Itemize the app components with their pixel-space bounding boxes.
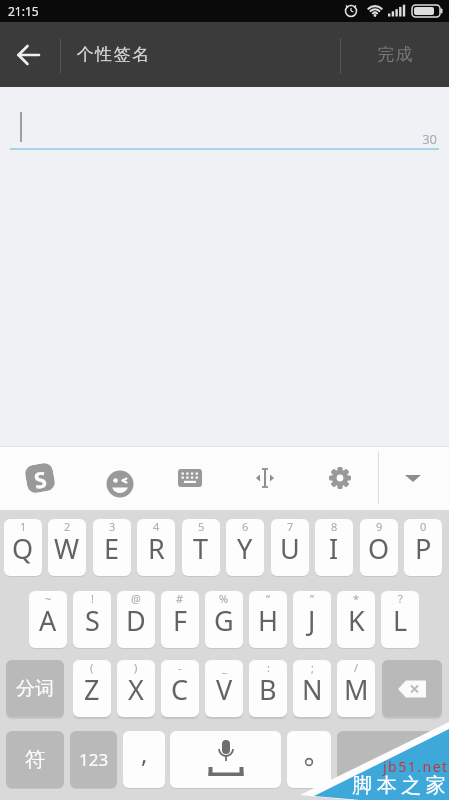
staticText: X	[128, 671, 144, 708]
staticText: 符	[25, 747, 45, 772]
staticText: 21:15	[8, 3, 39, 19]
staticText: E	[104, 530, 120, 567]
button[interactable]: :	[249, 660, 287, 717]
button[interactable]: 8	[315, 519, 353, 576]
staticText: 3	[109, 519, 116, 534]
staticText: -	[178, 660, 182, 675]
button[interactable]: ~	[29, 591, 67, 648]
button[interactable]: 分词	[6, 660, 64, 717]
staticText: ”	[310, 591, 314, 606]
button[interactable]: 123	[70, 731, 117, 788]
staticText: *	[353, 591, 360, 606]
button[interactable]: 符	[6, 731, 64, 788]
staticText: G	[214, 602, 234, 639]
staticText: @	[131, 591, 141, 606]
button[interactable]	[382, 660, 442, 717]
button[interactable]: S	[25, 462, 55, 494]
staticText: 个性签名	[76, 44, 150, 65]
staticText: ,	[141, 737, 148, 770]
staticText: L	[393, 602, 408, 639]
staticText: ?	[398, 591, 403, 606]
button[interactable]: ?	[381, 591, 419, 648]
staticText: T	[193, 530, 209, 567]
staticText: Y	[237, 530, 253, 567]
staticText: 6	[242, 519, 249, 534]
button[interactable]	[170, 731, 281, 788]
staticText: S	[32, 463, 49, 493]
staticText: B	[259, 671, 277, 708]
button[interactable]: 6	[226, 519, 264, 576]
staticText: H	[258, 602, 279, 639]
staticText: K	[348, 602, 365, 639]
button[interactable]: 1	[4, 519, 42, 576]
button[interactable]: -	[161, 660, 199, 717]
staticText: 0	[420, 519, 427, 534]
staticText: jb51.net	[383, 757, 449, 776]
staticText: V	[216, 671, 233, 708]
staticText: J	[308, 602, 316, 639]
button[interactable]: 7	[271, 519, 309, 576]
button[interactable]: 2	[48, 519, 86, 576]
staticText: F	[173, 602, 188, 639]
button[interactable]	[327, 464, 353, 492]
button[interactable]	[105, 469, 134, 498]
staticText: O	[368, 530, 390, 567]
button[interactable]: 完成	[341, 22, 449, 87]
button[interactable]	[252, 464, 278, 492]
staticText: !	[91, 591, 94, 606]
staticText: (	[90, 660, 94, 675]
button[interactable]	[398, 464, 428, 492]
button[interactable]: _	[205, 660, 243, 717]
button[interactable]: (	[73, 660, 111, 717]
button[interactable]: ”	[293, 591, 331, 648]
button[interactable]: ,	[123, 731, 165, 788]
staticText: ;	[311, 660, 314, 675]
staticText: 1	[20, 519, 27, 534]
staticText: _	[222, 660, 227, 675]
button[interactable]: %	[205, 591, 243, 648]
button[interactable]	[0, 22, 58, 87]
button[interactable]: !	[73, 591, 111, 648]
button[interactable]: 3	[93, 519, 131, 576]
button[interactable]: 0	[404, 519, 442, 576]
staticText: “	[266, 591, 270, 606]
staticText: 7	[287, 519, 294, 534]
button[interactable]	[287, 731, 331, 788]
staticText: 30	[402, 130, 437, 148]
staticText: 8	[331, 519, 338, 534]
staticText: N	[302, 671, 323, 708]
staticText: W	[54, 530, 80, 567]
button[interactable]: /	[337, 660, 375, 717]
staticText: 4	[153, 519, 160, 534]
button[interactable]: “	[249, 591, 287, 648]
button[interactable]	[337, 731, 442, 788]
staticText: 2	[64, 519, 71, 534]
button[interactable]: #	[161, 591, 199, 648]
button[interactable]: 4	[137, 519, 175, 576]
button[interactable]: )	[117, 660, 155, 717]
staticText: ~	[45, 591, 52, 606]
staticText: A	[39, 602, 57, 639]
staticText: /	[354, 660, 359, 675]
staticText: %	[219, 591, 229, 606]
staticText: :	[267, 660, 270, 675]
staticText: 脚本之家	[350, 773, 448, 798]
button[interactable]: 9	[360, 519, 398, 576]
staticText: Z	[84, 671, 100, 708]
staticText: C	[171, 671, 189, 708]
button[interactable]	[177, 464, 203, 492]
button[interactable]: ;	[293, 660, 331, 717]
staticText: S	[85, 602, 100, 639]
button[interactable]: @	[117, 591, 155, 648]
button[interactable]: 5	[182, 519, 220, 576]
staticText: 分词	[16, 677, 54, 701]
staticText: 5	[198, 519, 205, 534]
staticText: )	[134, 660, 138, 675]
staticText: M	[344, 671, 369, 708]
staticText: 9	[376, 519, 383, 534]
staticText: P	[415, 530, 432, 567]
staticText: D	[126, 602, 146, 639]
button[interactable]: *	[337, 591, 375, 648]
staticText: I	[329, 530, 339, 567]
staticText: #	[176, 591, 184, 606]
